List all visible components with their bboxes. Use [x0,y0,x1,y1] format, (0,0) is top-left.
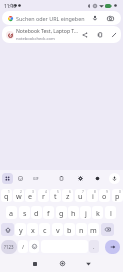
staticText: k [96,208,100,218]
button[interactable]: u [75,189,86,202]
button[interactable]: v [52,223,63,236]
staticText: w [16,191,22,201]
staticText: b [67,225,72,235]
staticText: 9 [106,190,108,194]
button[interactable]: Stickers [15,173,26,184]
staticText: h [71,208,76,218]
button[interactable]: s [19,206,30,219]
button[interactable]: Suchen oder URL eingeben [2,11,121,25]
button[interactable]: c [39,223,50,236]
button[interactable]: Settings [75,173,86,184]
button[interactable]: Shift [1,223,14,236]
staticText: p [115,191,120,201]
staticText: x [31,225,35,235]
staticText: 8 [94,190,96,194]
button[interactable]: z [62,189,73,202]
button[interactable]: Voice search [92,15,98,21]
button[interactable]: . [89,240,99,253]
button[interactable]: o [99,189,110,202]
staticText: r [42,191,45,201]
staticText: GIF [33,176,39,181]
button[interactable]: p [112,189,123,202]
staticText: 11:10 [4,3,17,9]
button[interactable]: n [76,223,87,236]
button[interactable]: / [18,240,28,253]
button[interactable]: d [31,206,42,219]
button[interactable]: Back [82,257,95,270]
staticText: o [102,191,107,201]
button[interactable]: Backspace [101,223,114,236]
staticText: j [85,208,87,218]
button[interactable]: x [27,223,38,236]
staticText: Suchen oder URL eingeben [16,15,85,22]
staticText: Notebook Test, Laptop T... [16,28,78,35]
staticText: n [79,225,84,235]
staticText: 7 [82,190,84,194]
button[interactable]: Home [56,257,69,270]
button[interactable]: Themes [92,173,103,184]
staticText: f [47,208,50,218]
button[interactable]: Emoji [29,240,39,253]
button[interactable]: Google Lens [107,15,114,22]
button[interactable]: e [25,189,36,202]
staticText: 5 [57,190,59,194]
button[interactable]: h [68,206,79,219]
button[interactable]: q [1,189,12,202]
staticText: v [56,225,60,235]
button[interactable]: r [38,189,49,202]
button[interactable]: Copy link [97,32,103,38]
staticText: 6 [69,190,71,194]
button[interactable]: l [105,206,116,219]
staticText: e [28,191,33,201]
button[interactable]: y [15,223,26,236]
button[interactable]: Clipboard [56,173,67,184]
staticText: m [90,225,97,235]
button[interactable]: i [87,189,98,202]
button[interactable]: b [64,223,75,236]
staticText: u [78,191,83,201]
staticText: d [34,208,39,218]
button[interactable]: a [6,206,17,219]
staticText: l [110,208,112,218]
button[interactable]: Keyboard modes [2,173,13,184]
staticText: 1 [8,190,10,194]
staticText: g [59,208,64,218]
staticText: ?123 [4,244,14,250]
button[interactable]: Enter [105,240,120,254]
staticText: 4 [45,190,47,194]
button[interactable]: Notebook Test, Laptop T... [2,26,121,43]
button[interactable]: Edit [111,32,117,38]
staticText: 3 [32,190,34,194]
button[interactable]: g [56,206,67,219]
button[interactable]: Recents [28,257,41,270]
button[interactable]: k [92,206,103,219]
button[interactable]: w [13,189,24,202]
staticText: / [22,243,25,251]
button[interactable]: GIF [30,173,41,184]
staticText: . [93,243,95,251]
staticText: a [9,208,14,218]
button[interactable]: j [80,206,91,219]
button[interactable]: Voice input [109,173,120,184]
staticText: i [92,191,94,201]
button[interactable]: ?123 [1,240,17,254]
staticText: 0 [119,190,121,194]
staticText: s [23,208,27,218]
staticText: t [54,191,57,201]
staticText: 2 [20,190,22,194]
staticText: q [4,191,9,201]
button[interactable]: Share [82,32,88,38]
button[interactable]: m [88,223,99,236]
button[interactable]: t [50,189,61,202]
staticText: z [66,191,70,201]
staticText: y [19,225,23,235]
staticText: c [43,225,47,235]
button[interactable]: f [43,206,54,219]
staticText: notebookcheck.com [16,36,55,42]
